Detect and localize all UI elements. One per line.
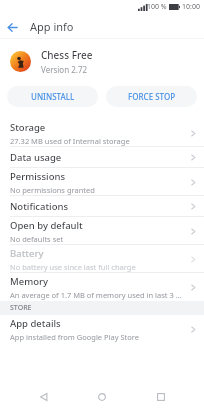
button[interactable]: App details bbox=[0, 315, 204, 343]
button[interactable]: FORCE STOP bbox=[106, 86, 197, 107]
button: Battery bbox=[0, 245, 204, 273]
button[interactable]: Notifications bbox=[0, 196, 204, 217]
staticText: App details bbox=[10, 317, 61, 330]
button[interactable]: Recents bbox=[146, 385, 176, 408]
staticText: Permissions bbox=[10, 170, 66, 183]
button[interactable]: Open by default bbox=[0, 217, 204, 245]
staticText: App installed from Google Play Store bbox=[10, 332, 139, 342]
staticText: Notifications bbox=[10, 200, 69, 213]
staticText: Battery bbox=[10, 247, 44, 260]
staticText: Memory bbox=[10, 275, 49, 288]
button[interactable]: UNINSTALL bbox=[7, 86, 98, 107]
button[interactable]: Data usage bbox=[0, 147, 204, 168]
staticText: Version 2.72 bbox=[41, 64, 88, 75]
button[interactable]: Back bbox=[29, 385, 59, 408]
staticText: Chess Free bbox=[41, 48, 93, 62]
staticText: UNINSTALL bbox=[31, 91, 75, 102]
staticText: STORE bbox=[10, 303, 32, 313]
staticText: Open by default bbox=[10, 219, 83, 232]
staticText: No battery use since last full charge bbox=[10, 262, 136, 272]
staticText: 100 % bbox=[147, 2, 167, 12]
staticText: No defaults set bbox=[10, 234, 64, 244]
button[interactable]: Storage bbox=[0, 119, 204, 147]
staticText: An average of 1.7 MB of memory used in l… bbox=[10, 290, 185, 300]
staticText: Storage bbox=[10, 121, 46, 134]
button[interactable]: Permissions bbox=[0, 168, 204, 196]
staticText: FORCE STOP bbox=[128, 91, 176, 102]
button[interactable]: Back bbox=[0, 15, 24, 39]
staticText: App info bbox=[30, 19, 74, 34]
staticText: Data usage bbox=[10, 151, 62, 164]
staticText: No permissions granted bbox=[10, 185, 95, 195]
staticText: 27.32 MB used of Internal storage bbox=[10, 136, 130, 146]
staticText: 10:00 bbox=[182, 2, 200, 12]
button[interactable]: Memory bbox=[0, 273, 204, 301]
button[interactable]: Home bbox=[87, 385, 117, 408]
